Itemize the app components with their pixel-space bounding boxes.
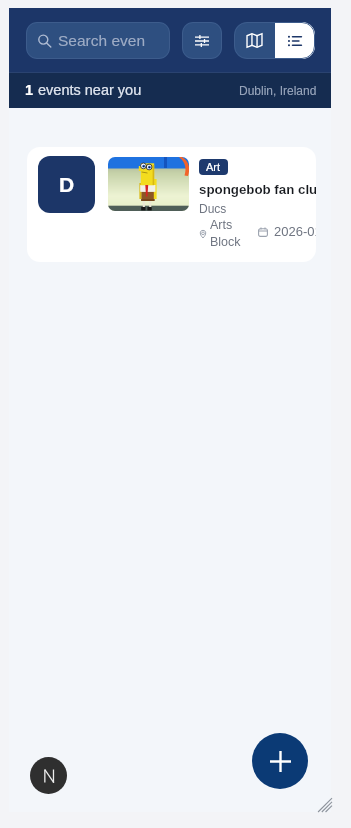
button[interactable]: Search even [26, 22, 170, 59]
button[interactable]: Dev tools [30, 757, 67, 794]
staticText: Search even [58, 32, 146, 49]
staticText: Art [206, 161, 221, 173]
staticText: Dublin, Ireland [239, 84, 317, 97]
staticText: spongebob fan club [199, 182, 316, 197]
button[interactable]: List view [275, 22, 315, 59]
button[interactable]: Create event [252, 733, 308, 789]
staticText: 2026-01-01 [274, 224, 316, 239]
button[interactable]: Filters [182, 22, 222, 59]
staticText: events near you [34, 82, 142, 98]
button[interactable]: Map view [234, 22, 275, 59]
button[interactable]: D [27, 147, 316, 262]
staticText: D [59, 173, 75, 196]
staticText: 1 [25, 82, 34, 98]
staticText: Ducs [199, 202, 227, 215]
staticText: Arts Block [210, 218, 241, 249]
